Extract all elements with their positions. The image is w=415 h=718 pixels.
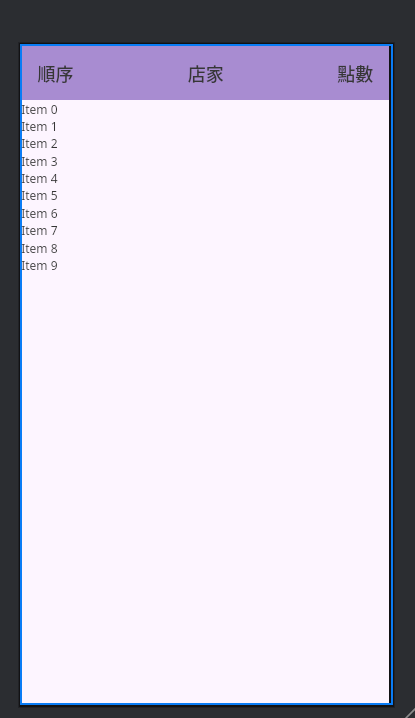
button[interactable]: Item 9 — [22, 256, 389, 274]
staticText: Item 9 — [21, 257, 58, 273]
staticText: Item 8 — [21, 239, 58, 255]
button[interactable]: 順序 — [22, 50, 84, 96]
button[interactable]: Resize window — [395, 698, 415, 718]
button[interactable]: Item 1 — [22, 117, 389, 135]
button[interactable]: Item 0 — [22, 100, 389, 117]
staticText: 順序 — [38, 60, 74, 86]
button[interactable]: Item 2 — [22, 135, 389, 152]
staticText: Item 2 — [21, 135, 58, 151]
button[interactable]: Item 6 — [22, 204, 389, 222]
staticText: Item 0 — [21, 100, 58, 116]
button[interactable]: Item 3 — [22, 152, 389, 170]
button[interactable]: Item 8 — [22, 239, 389, 256]
staticText: Item 1 — [21, 118, 58, 134]
button[interactable]: Item 5 — [22, 187, 389, 204]
staticText: Item 5 — [21, 187, 58, 203]
button[interactable]: 店家 — [178, 50, 234, 96]
staticText: 店家 — [188, 60, 224, 86]
button[interactable]: 點數 — [327, 50, 389, 96]
staticText: Item 4 — [21, 170, 58, 186]
button[interactable]: Item 4 — [22, 170, 389, 187]
button[interactable]: Item 7 — [22, 222, 389, 239]
staticText: Item 7 — [21, 222, 58, 238]
staticText: 點數 — [337, 60, 373, 86]
staticText: Item 6 — [21, 205, 58, 221]
staticText: Item 3 — [21, 153, 58, 169]
